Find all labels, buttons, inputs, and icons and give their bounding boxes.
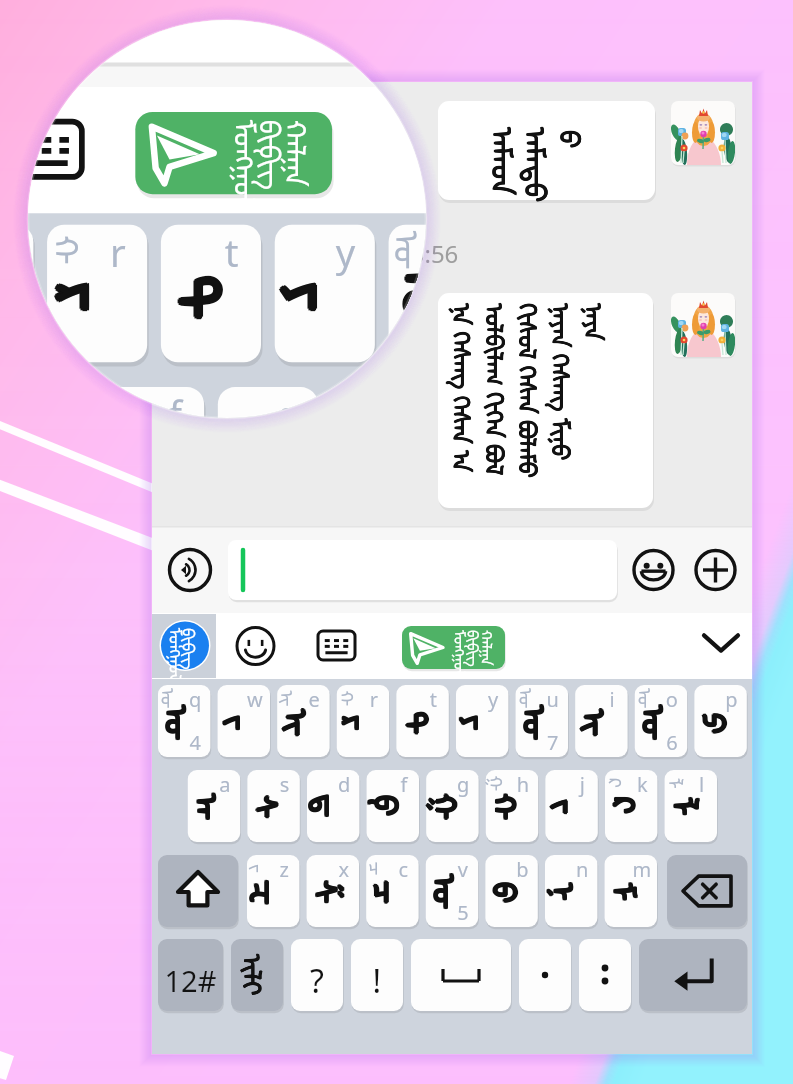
button[interactable]: Mongolian keyboard screenshot [0, 0, 793, 1084]
